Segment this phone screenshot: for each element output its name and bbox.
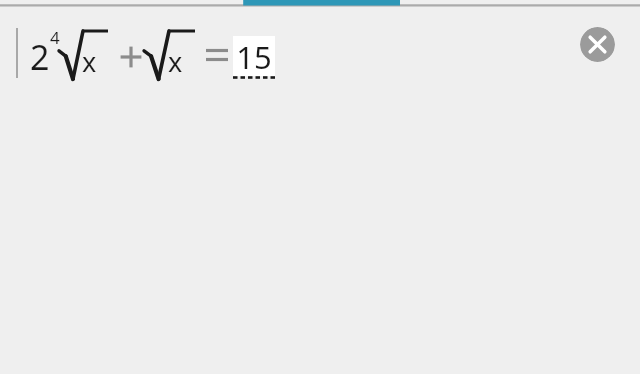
staticText: x <box>82 43 97 80</box>
staticText: x <box>168 43 183 80</box>
staticText: 4 <box>50 26 60 49</box>
button[interactable]: 2 <box>0 0 640 374</box>
staticText: 15 <box>236 36 272 76</box>
staticText: 2 <box>30 34 50 80</box>
button[interactable]: 15 <box>233 36 275 76</box>
button[interactable]: Close <box>580 27 615 62</box>
